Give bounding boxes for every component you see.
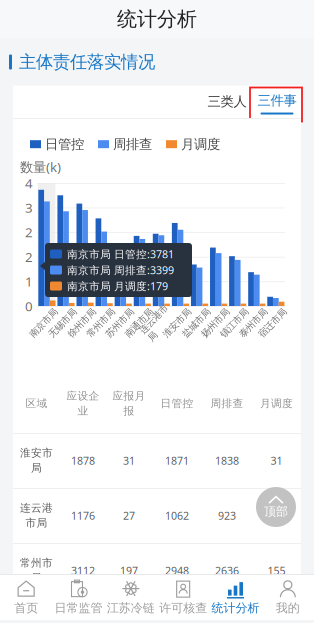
staticText: 周排查 (210, 397, 243, 410)
staticText: 155 (267, 563, 285, 578)
staticText: 南京市局 (25, 317, 61, 329)
button[interactable]: 回到顶部 (256, 487, 296, 527)
staticText: 淮安市 (20, 446, 53, 459)
staticText: 应设企 (66, 389, 99, 402)
staticText: 27 (123, 508, 135, 523)
staticText: 2636 (215, 563, 239, 578)
staticText: 2 (25, 223, 33, 241)
staticText: 南京市局 日管控:3781 (67, 247, 174, 261)
staticText: 市局 (25, 516, 47, 530)
staticText: 1871 (165, 453, 189, 468)
staticText: 1878 (71, 453, 95, 468)
staticText: 顶部 (264, 504, 288, 519)
staticText: 局 (31, 461, 42, 475)
staticText: 数量(k) (20, 158, 61, 176)
staticText: 首页 (14, 601, 38, 615)
staticText: 统计分析 (211, 601, 259, 615)
staticText: 局 (31, 571, 42, 585)
staticText: 日常监管 (54, 601, 102, 615)
staticText: 主体责任落实情况 (19, 51, 155, 73)
staticText: 31 (270, 453, 282, 468)
staticText: 无锡市局 (45, 317, 81, 329)
staticText: 常州市局 (83, 317, 119, 329)
button[interactable]: 三件事 (255, 88, 299, 121)
staticText: 苏州市局 (102, 317, 138, 329)
staticText: 3112 (71, 563, 95, 578)
staticText: 扬州市局 (197, 317, 233, 329)
staticText: 报 (123, 404, 134, 418)
button[interactable]: 三类人 (205, 85, 249, 117)
staticText: 197 (120, 563, 138, 578)
staticText: 盐城市局 (178, 317, 214, 329)
staticText: 月调度 (260, 397, 293, 410)
staticText: 2 (25, 248, 33, 266)
button[interactable]: 统计分析 (209, 574, 262, 620)
staticText: 南京市局 月调度:179 (67, 279, 168, 293)
staticText: 三件事 (257, 92, 296, 109)
staticText: 1062 (165, 508, 189, 523)
button[interactable]: 江苏冷链 (105, 574, 157, 620)
staticText: 区域 (25, 397, 47, 410)
staticText: 业 (77, 404, 88, 418)
staticText: 3 (25, 199, 33, 216)
staticText: 0 (25, 297, 33, 315)
staticText: 应报月 (112, 389, 145, 402)
button[interactable]: 首页 (0, 574, 52, 620)
staticText: 2948 (165, 563, 189, 578)
staticText: 日管控 (45, 136, 84, 152)
staticText: 连云港 (20, 501, 53, 514)
staticText: 南京市局 周排查:3399 (67, 263, 174, 277)
staticText: 三类人 (207, 93, 246, 110)
staticText: 923 (218, 508, 236, 523)
staticText: 1 (25, 272, 33, 290)
staticText: 淮安市局 (159, 317, 195, 329)
staticText: 江苏冷链 (107, 601, 155, 615)
staticText: 连云港市局 (140, 311, 176, 334)
button[interactable]: 我的 (262, 574, 314, 620)
staticText: 泰州市局 (235, 317, 271, 329)
staticText: 许可核查 (159, 601, 207, 615)
button[interactable]: 许可核查 (157, 574, 209, 620)
staticText: 南通市局 (121, 317, 157, 329)
staticText: 日管控 (160, 397, 193, 410)
button[interactable]: 日常监管 (52, 574, 105, 620)
staticText: 周排查 (113, 136, 152, 152)
staticText: 月调度 (181, 136, 220, 152)
staticText: 1176 (71, 508, 95, 523)
staticText: 统计分析 (117, 7, 197, 31)
staticText: 我的 (276, 601, 300, 615)
staticText: 4 (25, 174, 33, 192)
staticText: 常州市 (20, 556, 53, 569)
staticText: 1838 (215, 453, 239, 468)
staticText: 31 (123, 453, 135, 468)
staticText: 镇江市局 (216, 317, 252, 329)
staticText: 徐州市局 (64, 317, 100, 329)
staticText: 宿迁市局 (254, 317, 290, 329)
